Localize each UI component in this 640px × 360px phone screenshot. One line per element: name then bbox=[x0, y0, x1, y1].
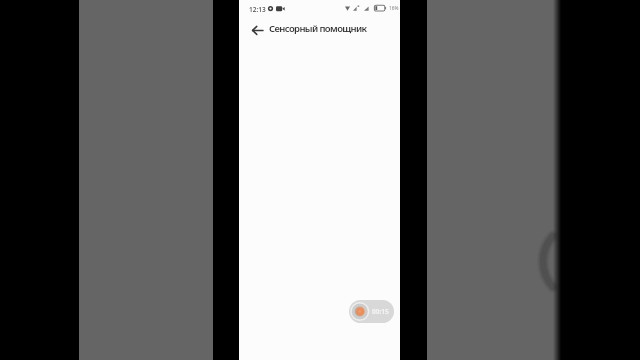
staticText: Сенсорный помощник bbox=[269, 22, 367, 35]
button[interactable]: 00:15 bbox=[349, 300, 394, 323]
staticText: 16% bbox=[389, 5, 399, 12]
button[interactable] bbox=[247, 20, 269, 42]
staticText: 12:13 bbox=[249, 5, 266, 14]
staticText: 00:15 bbox=[372, 307, 389, 316]
